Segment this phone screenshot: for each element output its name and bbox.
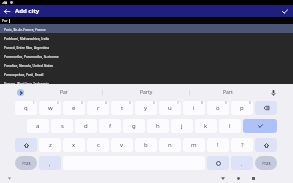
- button[interactable]: r: [87, 101, 109, 115]
- staticText: q: [24, 104, 28, 112]
- staticText: Paraná, Entre Ríos, Argentina: [4, 45, 50, 49]
- staticText: !: [217, 141, 219, 149]
- button[interactable]: Part: [206, 84, 250, 101]
- staticText: 9: [225, 101, 227, 105]
- button[interactable]: Back: [218, 173, 228, 183]
- button[interactable]: More suggestions: [12, 84, 28, 101]
- staticText: c: [97, 141, 100, 149]
- button[interactable]: Hide keyboard: [4, 173, 14, 183]
- button[interactable]: Emoji: [207, 156, 229, 170]
- button[interactable]: Paraná, Entre Ríos, Argentina: [0, 42, 293, 51]
- button[interactable]: Voice input: [265, 84, 281, 101]
- staticText: u: [168, 104, 172, 112]
- button[interactable]: h: [147, 119, 169, 133]
- button[interactable]: t: [111, 101, 133, 115]
- button[interactable]: ?123: [15, 156, 37, 170]
- staticText: ?: [241, 141, 244, 149]
- button[interactable]: s: [51, 119, 73, 133]
- staticText: Par: [2, 18, 8, 23]
- staticText: t: [121, 104, 124, 112]
- button[interactable]: p: [231, 101, 253, 115]
- button[interactable]: ?: [231, 138, 253, 152]
- staticText: 0: [249, 101, 251, 105]
- button[interactable]: Shift: [255, 138, 277, 152]
- button[interactable]: Paramaribo, Paramaribo, Suriname: [0, 51, 293, 60]
- staticText: 7: [177, 101, 179, 105]
- button[interactable]: n: [159, 138, 181, 152]
- button[interactable]: Back: [1, 5, 13, 17]
- staticText: 4: [105, 101, 107, 105]
- button[interactable]: Enter: [243, 119, 277, 133]
- button[interactable]: Parbhani, Maharashtra, India: [0, 33, 293, 42]
- button[interactable]: x: [63, 138, 85, 152]
- staticText: z: [49, 141, 52, 149]
- button[interactable]: Par: [42, 84, 86, 101]
- button[interactable]: Par: [0, 17, 293, 24]
- button[interactable]: Recents: [248, 173, 258, 183]
- button[interactable]: u: [159, 101, 181, 115]
- button[interactable]: c: [87, 138, 109, 152]
- staticText: Add city: [15, 7, 40, 15]
- button[interactable]: i: [183, 101, 205, 115]
- button[interactable]: Shift: [15, 138, 37, 152]
- staticText: Party: [140, 89, 153, 96]
- button[interactable]: ?123: [255, 156, 277, 170]
- button[interactable]: ,: [39, 156, 61, 170]
- staticText: Parauapebas, Pará, Brazil: [4, 72, 44, 76]
- staticText: .: [241, 160, 243, 167]
- staticText: 8: [201, 101, 203, 105]
- button[interactable]: z: [39, 138, 61, 152]
- button[interactable]: l: [219, 119, 241, 133]
- button[interactable]: v: [111, 138, 133, 152]
- staticText: f: [109, 122, 112, 130]
- staticText: j: [181, 122, 183, 130]
- staticText: 5: [129, 101, 131, 105]
- staticText: w: [48, 104, 53, 112]
- button[interactable]: Parung, West Java, Indonesia: [0, 78, 293, 87]
- staticText: ?123: [22, 161, 31, 166]
- staticText: Parung, West Java, Indonesia: [4, 81, 49, 85]
- button[interactable]: j: [171, 119, 193, 133]
- button[interactable]: !: [207, 138, 229, 152]
- staticText: 2: [57, 101, 59, 105]
- staticText: v: [120, 141, 124, 149]
- button[interactable]: Parauapebas, Pará, Brazil: [0, 69, 293, 78]
- button[interactable]: b: [135, 138, 157, 152]
- button[interactable]: Paradise, Nevada, United States: [0, 60, 293, 69]
- staticText: Paradise, Nevada, United States: [4, 63, 54, 67]
- button[interactable]: Done: [279, 5, 291, 17]
- staticText: ?123: [262, 161, 271, 166]
- staticText: k: [204, 122, 208, 130]
- staticText: n: [168, 141, 172, 149]
- staticText: 1: [33, 101, 35, 105]
- button[interactable]: g: [123, 119, 145, 133]
- button[interactable]: Backspace: [255, 101, 277, 115]
- staticText: 6: [153, 101, 155, 105]
- staticText: a: [36, 122, 40, 130]
- button[interactable]: Home: [233, 173, 243, 183]
- button[interactable]: d: [75, 119, 97, 133]
- button[interactable]: m: [183, 138, 205, 152]
- staticText: Paramaribo, Paramaribo, Suriname: [4, 54, 59, 58]
- staticText: b: [144, 141, 148, 149]
- staticText: h: [156, 122, 160, 130]
- button[interactable]: f: [99, 119, 121, 133]
- button[interactable]: q: [15, 101, 37, 115]
- button[interactable]: Party: [124, 84, 168, 101]
- button[interactable]: k: [195, 119, 217, 133]
- staticText: Par: [60, 89, 68, 96]
- button[interactable]: o: [207, 101, 229, 115]
- staticText: Parbhani, Maharashtra, India: [4, 36, 50, 40]
- button[interactable]: e: [63, 101, 85, 115]
- button[interactable]: w: [39, 101, 61, 115]
- staticText: y: [144, 104, 148, 112]
- button[interactable]: Paris, Ile-de-France, France: [0, 24, 293, 33]
- staticText: m: [191, 141, 197, 149]
- button[interactable]: y: [135, 101, 157, 115]
- staticText: i: [193, 104, 195, 112]
- staticText: x: [72, 141, 76, 149]
- button[interactable]: a: [27, 119, 49, 133]
- button[interactable]: .: [231, 156, 253, 170]
- staticText: p: [240, 104, 244, 112]
